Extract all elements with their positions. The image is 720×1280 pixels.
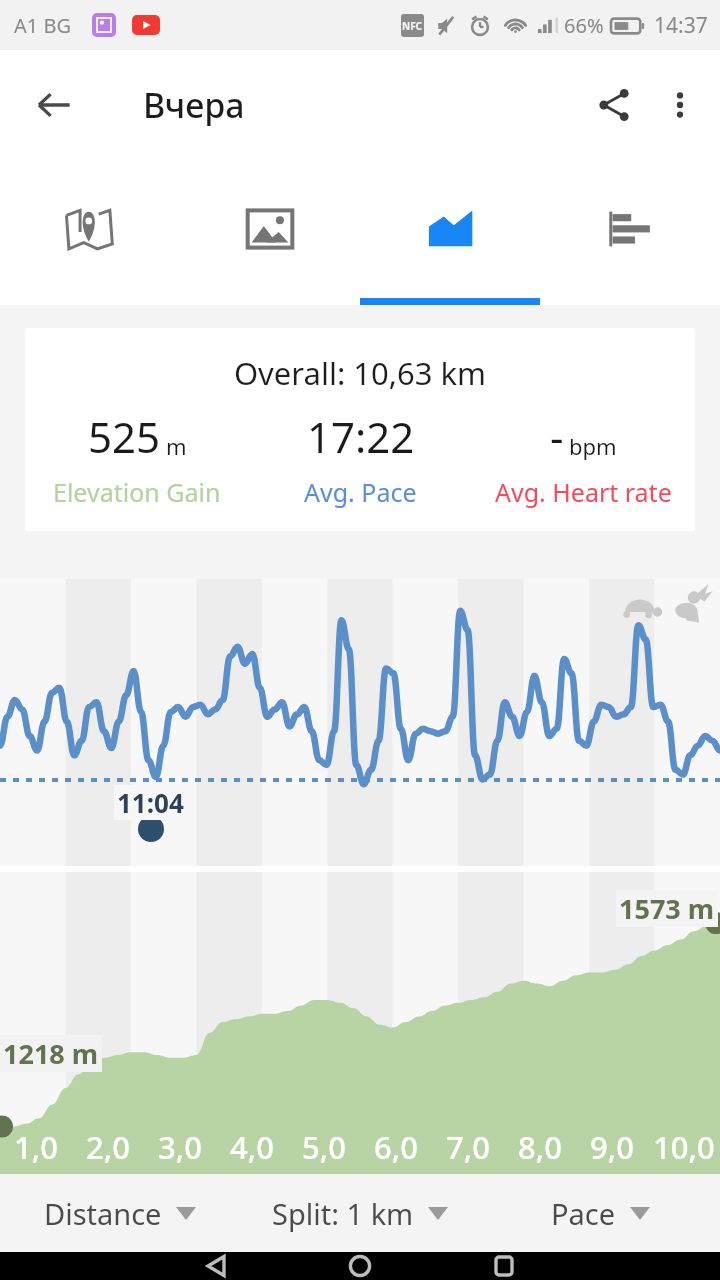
staticText: 2,0: [86, 1126, 130, 1168]
staticText: 525: [88, 408, 161, 465]
staticText: 6,0: [374, 1126, 418, 1168]
staticText: 10,0: [653, 1126, 715, 1168]
staticText: 11:04: [117, 785, 184, 820]
staticText: Вчера: [143, 82, 245, 128]
button[interactable]: Back: [20, 71, 88, 139]
staticText: 66%: [564, 12, 604, 39]
button[interactable]: Recents: [432, 1252, 576, 1280]
staticText: Pace: [551, 1194, 616, 1233]
staticText: 1,0: [14, 1126, 58, 1168]
button[interactable]: Back: [144, 1252, 288, 1280]
staticText: bpm: [569, 431, 617, 461]
button[interactable]: Distance: [0, 1174, 240, 1252]
staticText: 8,0: [518, 1126, 562, 1168]
staticText: 7,0: [446, 1126, 490, 1168]
staticText: 3,0: [158, 1126, 202, 1168]
button[interactable]: Photos: [180, 160, 360, 305]
staticText: 9,0: [590, 1126, 634, 1168]
button[interactable]: Split: 1 km: [240, 1174, 480, 1252]
button[interactable]: Pace: [480, 1174, 720, 1252]
staticText: Overall: 10,63 km: [25, 352, 695, 394]
button[interactable]: Charts: [360, 160, 540, 305]
button[interactable]: More options: [648, 73, 712, 137]
button[interactable]: Overall: 10,63 km: [25, 328, 695, 531]
staticText: 5,0: [302, 1126, 346, 1168]
staticText: -: [550, 408, 564, 465]
staticText: 1218 m: [3, 1035, 99, 1072]
button[interactable]: Share: [580, 71, 648, 139]
staticText: A1 BG: [14, 12, 71, 39]
staticText: 17:22: [307, 408, 415, 465]
button[interactable]: Splits: [540, 160, 720, 305]
button[interactable]: Home: [288, 1252, 432, 1280]
staticText: Elevation Gain: [53, 475, 221, 509]
staticText: 4,0: [230, 1126, 274, 1168]
staticText: Avg. Pace: [304, 475, 417, 509]
button[interactable]: Map: [0, 160, 180, 305]
staticText: Distance: [44, 1194, 162, 1233]
staticText: NFC: [402, 19, 423, 33]
staticText: m: [166, 431, 187, 461]
staticText: 1573 m: [619, 890, 715, 927]
staticText: Split: 1 km: [272, 1194, 414, 1233]
staticText: Avg. Heart rate: [495, 475, 672, 509]
staticText: 14:37: [654, 11, 708, 40]
